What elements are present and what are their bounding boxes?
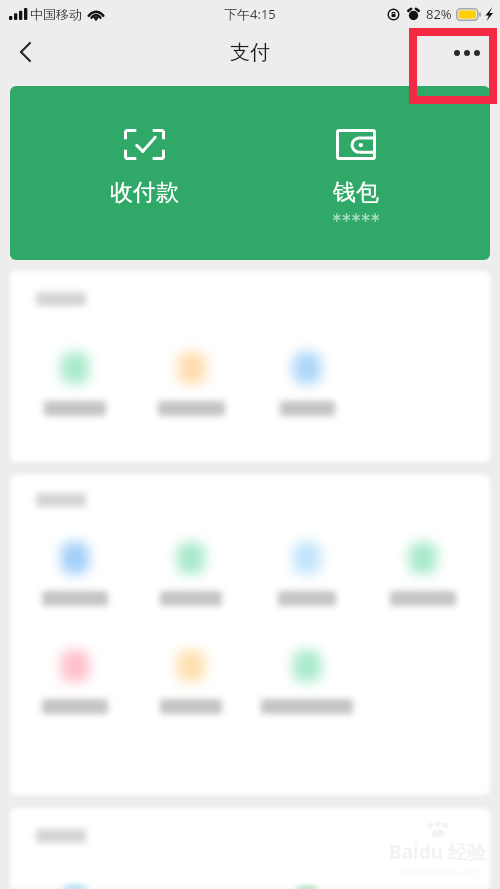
button[interactable]	[133, 336, 249, 420]
button[interactable]	[249, 336, 365, 420]
staticText: 钱包	[333, 178, 379, 207]
button[interactable]	[17, 336, 133, 420]
button[interactable]	[249, 634, 365, 718]
button[interactable]	[17, 634, 133, 718]
staticText: 中国移动	[30, 6, 82, 22]
staticText: Baidu 经验	[389, 839, 486, 865]
button[interactable]: 钱包	[246, 86, 466, 260]
staticText: 82%	[426, 5, 452, 23]
button[interactable]: More options	[438, 28, 500, 78]
button[interactable]	[133, 634, 249, 718]
button[interactable]: Back	[0, 28, 50, 78]
button[interactable]: 收付款	[34, 86, 254, 260]
button[interactable]	[365, 526, 481, 610]
staticText: 收付款	[110, 178, 179, 207]
button[interactable]	[17, 872, 133, 889]
staticText: 支付	[230, 40, 270, 65]
button[interactable]	[249, 872, 365, 889]
button[interactable]	[133, 526, 249, 610]
button[interactable]	[17, 526, 133, 610]
button[interactable]	[249, 526, 365, 610]
staticText: 下午4:15	[224, 5, 276, 23]
